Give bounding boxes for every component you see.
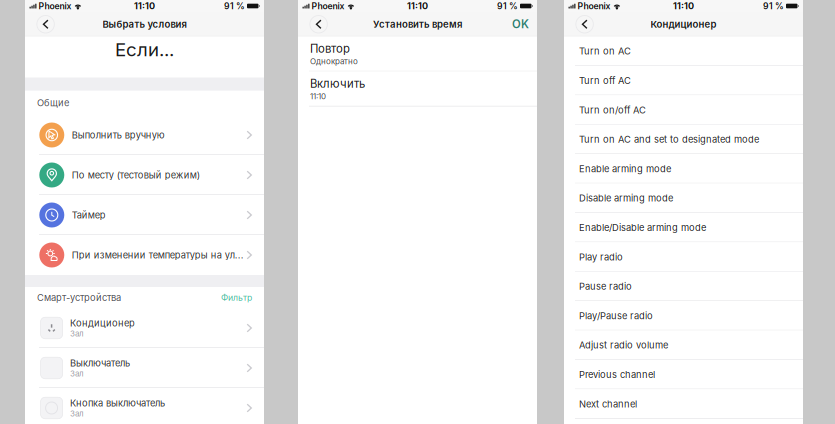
button[interactable]: Back (31, 13, 60, 35)
staticText: Previous channel (579, 369, 655, 380)
staticText: Установить время (373, 18, 462, 30)
button[interactable]: По месту (тестовый режим) (25, 155, 264, 195)
button[interactable]: Play radio (564, 242, 803, 272)
button[interactable]: Включить (298, 71, 537, 106)
button[interactable]: Turn on AC (564, 36, 803, 66)
button[interactable]: Pause radio (564, 272, 803, 301)
button[interactable]: При изменении температуры на ул... (25, 235, 264, 275)
button[interactable]: Back (570, 13, 599, 35)
button[interactable]: Previous channel (564, 360, 803, 389)
staticText: 91 % (497, 1, 518, 11)
staticText: Однократно (310, 56, 358, 66)
staticText: OK (512, 17, 529, 31)
button[interactable]: Turn on AC and set to designated mode (564, 125, 803, 154)
button[interactable]: Disable arming mode (564, 183, 803, 213)
staticText: Включить (310, 77, 365, 90)
staticText: Turn on/off AC (579, 104, 646, 116)
staticText: 11:10 (407, 0, 428, 11)
staticText: Кондиционер (70, 317, 135, 329)
staticText: Play/Pause radio (579, 310, 653, 321)
staticText: Turn on AC and set to designated mode (579, 134, 759, 145)
staticText: Next channel (579, 398, 637, 410)
button[interactable]: Кнопка выключатель (25, 388, 264, 424)
button[interactable]: Adjust radio volume (564, 330, 803, 360)
staticText: 11:10 (310, 91, 326, 101)
button[interactable]: Next channel (564, 389, 803, 419)
staticText: Adjust radio volume (579, 340, 668, 351)
button[interactable]: Enable/Disable arming mode (564, 213, 803, 242)
button[interactable]: Turn off AC (564, 66, 803, 95)
staticText: Зал (70, 409, 84, 418)
button[interactable]: Enable arming mode (564, 154, 803, 183)
staticText: Зал (70, 329, 84, 338)
staticText: Phoenix (311, 1, 344, 11)
button[interactable]: Таймер (25, 195, 264, 235)
staticText: По месту (тестовый режим) (72, 169, 200, 181)
staticText: 91 % (763, 1, 784, 11)
staticText: Выключатель (70, 357, 130, 369)
staticText: Turn on AC (579, 46, 631, 57)
button[interactable]: OK (506, 17, 529, 31)
button[interactable]: Выключатель (25, 348, 264, 388)
button[interactable]: Повтор (298, 36, 537, 71)
staticText: Зал (70, 369, 84, 378)
staticText: Таймер (72, 209, 106, 221)
button[interactable]: Back (304, 13, 333, 35)
staticText: Смарт-устройства (37, 292, 121, 303)
button[interactable]: Фильтр (221, 292, 252, 303)
staticText: Pause radio (579, 281, 632, 292)
staticText: Общие (37, 97, 69, 109)
button[interactable]: Turn on/off AC (564, 95, 803, 125)
button[interactable]: Выполнить вручную (25, 115, 264, 155)
staticText: Выполнить вручную (72, 129, 165, 141)
staticText: 91 % (224, 1, 245, 11)
staticText: Turn off AC (579, 75, 631, 86)
staticText: Повтор (310, 42, 350, 55)
staticText: Если... (115, 38, 174, 61)
staticText: Disable arming mode (579, 193, 673, 204)
staticText: При изменении температуры на ул... (72, 249, 243, 261)
staticText: Enable arming mode (579, 163, 671, 174)
staticText: Кнопка выключатель (70, 397, 165, 409)
staticText: Enable/Disable arming mode (579, 222, 706, 233)
staticText: Play radio (579, 251, 623, 263)
staticText: Выбрать условия (102, 18, 186, 30)
staticText: Phoenix (577, 1, 610, 11)
button[interactable]: Кондиционер (25, 308, 264, 348)
button[interactable]: Play/Pause radio (564, 301, 803, 330)
staticText: Кондиционер (650, 18, 716, 30)
staticText: Phoenix (38, 1, 71, 11)
staticText: 11:10 (673, 0, 694, 11)
staticText: 11:10 (134, 0, 155, 11)
staticText: Фильтр (221, 292, 252, 303)
